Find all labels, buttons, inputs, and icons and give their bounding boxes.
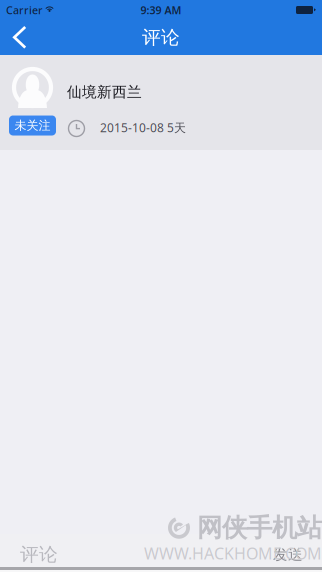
staticText: 评论 xyxy=(20,543,58,566)
button[interactable]: 评论 xyxy=(0,534,210,567)
staticText: 发送 xyxy=(273,545,303,563)
staticText: 网侠手机站 xyxy=(197,512,322,543)
staticText: 仙境新西兰 xyxy=(67,83,142,101)
staticText: 未关注 xyxy=(14,118,50,133)
button[interactable]: 仙境新西兰 xyxy=(0,55,322,150)
staticText: 2015-10-08 5天 xyxy=(100,119,186,135)
staticText: 评论 xyxy=(142,26,180,49)
button[interactable]: Back xyxy=(0,20,41,55)
staticText: Carrier xyxy=(6,3,43,17)
button[interactable]: 发送 xyxy=(273,534,322,567)
staticText: WWW.HACKHOME.COM xyxy=(144,543,322,564)
staticText: 9:39 AM xyxy=(140,3,181,17)
